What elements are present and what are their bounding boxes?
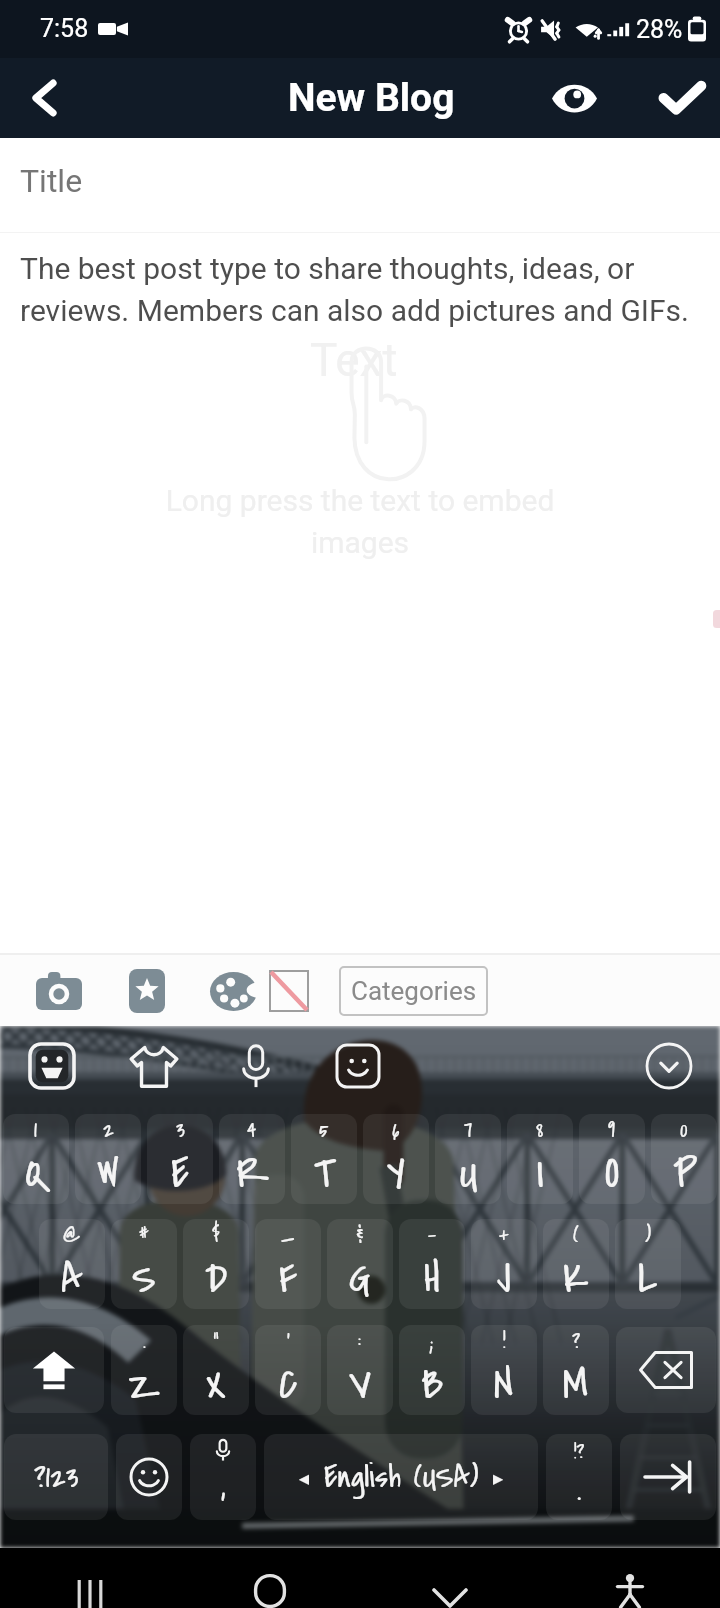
staticText: J	[497, 1249, 511, 1308]
button[interactable]: :	[324, 1322, 396, 1418]
staticText: :	[358, 1326, 362, 1357]
staticText: Categories	[351, 976, 477, 1006]
button[interactable]: Backspace	[612, 1324, 720, 1416]
button[interactable]: 5	[288, 1111, 360, 1207]
staticText: ,	[221, 1463, 226, 1511]
button[interactable]: Recents	[0, 1548, 180, 1608]
staticText: L	[638, 1249, 658, 1308]
button[interactable]: Colour	[204, 962, 262, 1020]
staticText: !	[503, 1326, 506, 1357]
button[interactable]: Back	[0, 58, 88, 138]
staticText: P	[673, 1144, 696, 1203]
staticText: +	[499, 1220, 509, 1251]
button[interactable]: .	[108, 1322, 180, 1418]
staticText: @	[63, 1220, 81, 1251]
staticText: I	[537, 1144, 544, 1203]
button[interactable]: Emoji keyboard	[22, 1036, 82, 1096]
staticText: (	[573, 1220, 579, 1251]
button[interactable]: "	[180, 1322, 252, 1418]
staticText: W	[97, 1144, 120, 1203]
staticText: $	[212, 1220, 220, 1251]
button[interactable]: Categories	[339, 966, 488, 1016]
button[interactable]: Emoji	[112, 1431, 186, 1523]
button[interactable]: #	[108, 1216, 180, 1312]
staticText: Q	[25, 1144, 48, 1203]
button[interactable]: @	[36, 1216, 108, 1312]
staticText: H	[424, 1249, 440, 1308]
staticText: "	[213, 1326, 219, 1357]
staticText: ?	[572, 1326, 581, 1357]
staticText: 28%	[636, 15, 683, 44]
button[interactable]: Shift	[0, 1324, 108, 1416]
button[interactable]: 9	[576, 1111, 648, 1207]
button[interactable]: 3	[144, 1111, 216, 1207]
button[interactable]: &	[324, 1216, 396, 1312]
staticText: '	[287, 1326, 290, 1357]
button[interactable]: ,	[186, 1431, 260, 1523]
staticText: ?123	[34, 1455, 79, 1499]
button[interactable]: Add photo	[30, 962, 88, 1020]
staticText: ▸	[493, 1466, 504, 1489]
staticText: K	[563, 1249, 589, 1308]
staticText: !?	[574, 1437, 585, 1467]
button[interactable]: Hide keyboard	[638, 1035, 700, 1097]
staticText: N	[494, 1355, 514, 1414]
staticText: 8	[536, 1115, 544, 1146]
staticText: 6	[392, 1115, 400, 1146]
button[interactable]: 2	[72, 1111, 144, 1207]
button[interactable]: !?	[542, 1431, 616, 1523]
staticText: S	[132, 1249, 156, 1308]
staticText: 7	[464, 1115, 473, 1146]
staticText: 7:58	[40, 14, 89, 43]
staticText: &	[356, 1220, 364, 1251]
button[interactable]: 0	[648, 1111, 720, 1207]
staticText: 5	[319, 1115, 329, 1146]
button[interactable]: Preview	[504, 58, 644, 138]
button[interactable]: ?	[540, 1322, 612, 1418]
staticText: C	[279, 1355, 298, 1414]
button[interactable]: '	[252, 1322, 324, 1418]
button[interactable]: $	[180, 1216, 252, 1312]
button[interactable]: 4	[216, 1111, 288, 1207]
button[interactable]: !	[468, 1322, 540, 1418]
button[interactable]: _	[252, 1216, 324, 1312]
button[interactable]: Enter	[616, 1431, 720, 1523]
button[interactable]: ?123	[0, 1431, 112, 1523]
button[interactable]: 6	[360, 1111, 432, 1207]
button[interactable]: 8	[504, 1111, 576, 1207]
button[interactable]: GIF	[328, 1036, 388, 1096]
button[interactable]: )	[612, 1216, 684, 1312]
button[interactable]: Voice input	[226, 1036, 286, 1096]
button[interactable]: Home	[180, 1548, 360, 1608]
button[interactable]: (	[540, 1216, 612, 1312]
staticText: U	[459, 1144, 478, 1203]
staticText: -	[427, 1220, 437, 1251]
staticText: T	[314, 1144, 334, 1203]
button[interactable]: Publish	[644, 58, 720, 138]
button[interactable]: Accessibility	[540, 1548, 720, 1608]
staticText: R	[236, 1144, 269, 1203]
staticText: _	[281, 1220, 295, 1251]
staticText: Z	[128, 1355, 161, 1414]
staticText: English (USA)	[324, 1455, 479, 1499]
staticText: 3	[176, 1115, 185, 1146]
button[interactable]: ◂	[260, 1431, 542, 1523]
button[interactable]: No colour	[262, 964, 316, 1018]
staticText: 2	[103, 1115, 114, 1146]
staticText: G	[349, 1249, 371, 1308]
staticText: #	[139, 1220, 149, 1251]
button[interactable]: -	[396, 1216, 468, 1312]
button[interactable]: Stickers	[124, 1036, 184, 1096]
staticText: )	[645, 1220, 652, 1251]
staticText: B	[421, 1355, 444, 1414]
button[interactable]: 1	[0, 1111, 72, 1207]
staticText: O	[605, 1144, 620, 1203]
button[interactable]: +	[468, 1216, 540, 1312]
button[interactable]: 7	[432, 1111, 504, 1207]
staticText: New Blog	[288, 75, 455, 121]
staticText: Text	[310, 333, 398, 387]
button[interactable]: Favorite	[118, 962, 176, 1020]
button[interactable]: ;	[396, 1322, 468, 1418]
button[interactable]: Dismiss keyboard	[360, 1548, 540, 1608]
staticText: Long press the text to embed images	[160, 483, 560, 561]
